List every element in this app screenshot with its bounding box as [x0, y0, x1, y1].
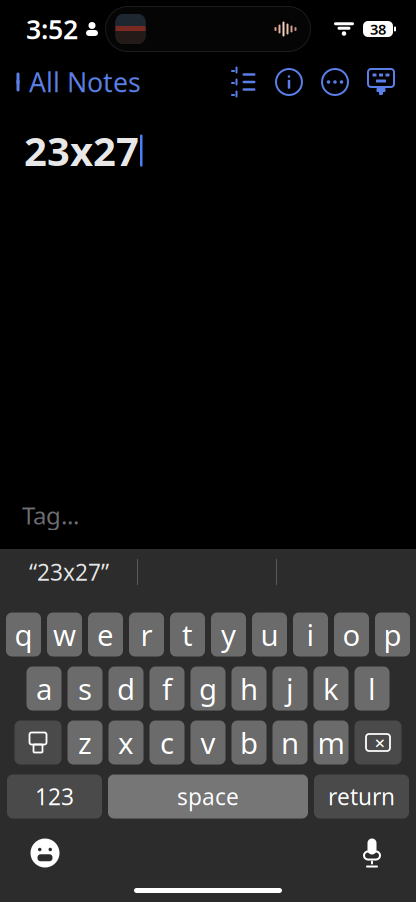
button[interactable]: j — [272, 666, 307, 710]
staticText: s — [78, 669, 92, 708]
staticText: m — [317, 723, 344, 762]
button[interactable]: “23x27” — [0, 549, 138, 595]
staticText: d — [117, 669, 135, 708]
staticText: × — [374, 730, 385, 755]
button[interactable]: More — [312, 62, 358, 102]
staticText: f — [162, 669, 172, 708]
staticText: z — [78, 723, 92, 762]
staticText: e — [97, 615, 114, 654]
staticText: 23x27 — [24, 124, 139, 177]
staticText: 38 — [370, 19, 386, 39]
staticText: 3:52 — [26, 11, 78, 47]
staticText: v — [200, 723, 215, 762]
button[interactable]: Info — [266, 62, 312, 102]
staticText: i — [306, 615, 314, 654]
staticText: All Notes — [29, 64, 141, 100]
button[interactable]: w — [47, 612, 82, 656]
button[interactable]: p — [375, 612, 410, 656]
staticText: 123 — [35, 781, 74, 811]
staticText: h — [240, 669, 258, 708]
button[interactable]: o — [334, 612, 369, 656]
button[interactable]: l — [354, 666, 389, 710]
staticText: c — [160, 723, 174, 762]
staticText: n — [281, 723, 299, 762]
staticText: l — [368, 669, 376, 708]
staticText: return — [328, 781, 395, 811]
staticText: “23x27” — [29, 557, 109, 587]
button[interactable]: 123 — [7, 774, 102, 818]
staticText: g — [199, 669, 217, 708]
button[interactable]: Emoji — [0, 832, 60, 874]
staticText: u — [260, 615, 278, 654]
button[interactable]: Hide Keyboard — [358, 62, 404, 102]
button[interactable]: Checklist — [220, 62, 266, 102]
button[interactable]: space — [108, 774, 308, 818]
staticText: p — [383, 615, 401, 654]
button[interactable]: k — [313, 666, 348, 710]
button[interactable]: r — [129, 612, 164, 656]
button[interactable]: m — [313, 720, 348, 764]
button[interactable]: c — [149, 720, 184, 764]
button[interactable]: f — [149, 666, 184, 710]
button[interactable]: d — [108, 666, 143, 710]
button[interactable]: b — [231, 720, 266, 764]
staticText: w — [53, 615, 76, 654]
button[interactable]: u — [252, 612, 287, 656]
staticText: x — [118, 723, 134, 762]
button[interactable]: v — [190, 720, 225, 764]
staticText: y — [221, 615, 236, 654]
staticText: j — [286, 669, 294, 708]
staticText: Tag... — [22, 499, 79, 531]
staticText: b — [240, 723, 258, 762]
button[interactable]: q — [6, 612, 41, 656]
button[interactable]: t — [170, 612, 205, 656]
button[interactable]: s — [67, 666, 102, 710]
button[interactable]: i — [293, 612, 328, 656]
button[interactable]: e — [88, 612, 123, 656]
staticText: o — [342, 615, 360, 654]
button[interactable]: h — [231, 666, 266, 710]
button[interactable]: n — [272, 720, 307, 764]
button[interactable]: All Notes — [0, 56, 153, 108]
staticText: space — [177, 781, 239, 811]
staticText: k — [323, 669, 339, 708]
button[interactable]: x — [108, 720, 143, 764]
button[interactable]: Dictate — [360, 832, 416, 874]
button[interactable]: return — [314, 774, 409, 818]
staticText: a — [36, 669, 52, 708]
button[interactable]: y — [211, 612, 246, 656]
staticText: r — [140, 615, 152, 654]
button[interactable]: Delete — [354, 720, 401, 764]
staticText: t — [182, 615, 193, 654]
button[interactable]: g — [190, 666, 225, 710]
button[interactable]: z — [67, 720, 102, 764]
staticText: q — [14, 615, 32, 654]
button[interactable]: a — [26, 666, 61, 710]
button[interactable]: Shift — [14, 720, 61, 764]
